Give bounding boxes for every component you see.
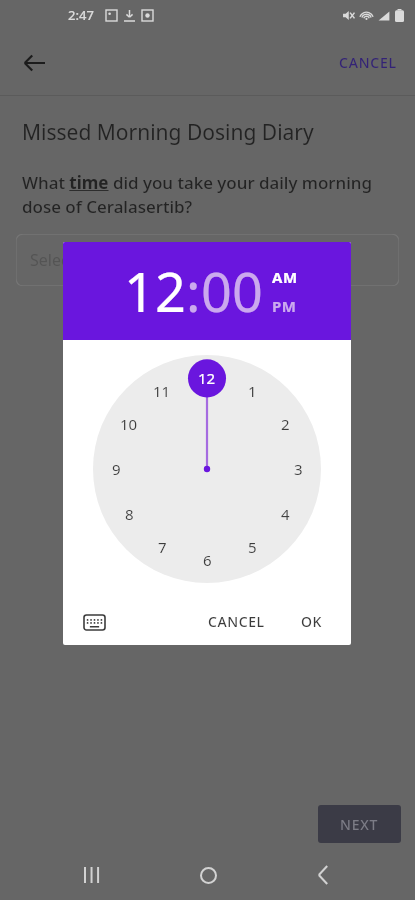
button[interactable]: 7 xyxy=(143,528,181,566)
staticText: 8 xyxy=(125,504,134,524)
button[interactable]: 12 xyxy=(124,254,186,328)
button[interactable]: 4 xyxy=(266,495,304,533)
staticText: 10 xyxy=(120,414,138,434)
staticText: OK xyxy=(301,612,323,631)
button[interactable]: 6 xyxy=(188,541,226,579)
button[interactable]: NEXT xyxy=(318,805,401,843)
button[interactable]: 5 xyxy=(233,528,271,566)
button[interactable]: 11 xyxy=(143,372,181,410)
button[interactable]: 3 xyxy=(279,450,317,488)
staticText: CANCEL xyxy=(339,53,397,72)
staticText: 00 xyxy=(201,254,263,328)
staticText: 12 xyxy=(124,254,186,328)
staticText: Select xyxy=(30,249,75,271)
button[interactable]: CANCEL xyxy=(329,45,407,80)
staticText: 11 xyxy=(153,381,171,401)
button[interactable]: AM xyxy=(272,265,298,289)
button[interactable]: OK xyxy=(291,605,333,638)
button[interactable]: 12 xyxy=(188,359,226,397)
button[interactable]: Select xyxy=(16,234,399,286)
staticText: 2 xyxy=(281,414,290,434)
staticText: 3 xyxy=(294,459,303,479)
button[interactable]: Back xyxy=(299,851,347,899)
button[interactable]: Home xyxy=(184,851,232,899)
staticText: 4 xyxy=(281,504,290,524)
button[interactable]: 00 xyxy=(201,254,263,328)
button[interactable]: Recent apps xyxy=(68,851,116,899)
staticText: 7 xyxy=(158,537,167,557)
button[interactable]: 9 xyxy=(97,450,135,488)
staticText: 9 xyxy=(112,459,121,479)
staticText: CANCEL xyxy=(208,612,265,631)
button[interactable]: 2 xyxy=(266,405,304,443)
staticText: 6 xyxy=(203,550,212,570)
staticText: NEXT xyxy=(340,815,379,834)
staticText: : xyxy=(186,254,201,328)
staticText: AM xyxy=(272,267,298,287)
button[interactable]: Switch to text input xyxy=(77,605,111,639)
button[interactable]: CANCEL xyxy=(198,605,275,638)
staticText: Missed Morning Dosing Diary xyxy=(22,118,314,147)
button[interactable]: Back xyxy=(12,41,56,85)
button[interactable]: 1 xyxy=(233,372,271,410)
staticText: PM xyxy=(272,296,297,316)
button[interactable]: 8 xyxy=(110,495,148,533)
staticText: 5 xyxy=(248,537,257,557)
staticText: 1 xyxy=(248,381,257,401)
button[interactable]: 10 xyxy=(110,405,148,443)
staticText: 2:47 xyxy=(68,6,94,24)
button[interactable]: PM xyxy=(272,294,297,318)
staticText: What time did you take your daily mornin… xyxy=(22,171,379,218)
staticText: 12 xyxy=(198,368,216,388)
